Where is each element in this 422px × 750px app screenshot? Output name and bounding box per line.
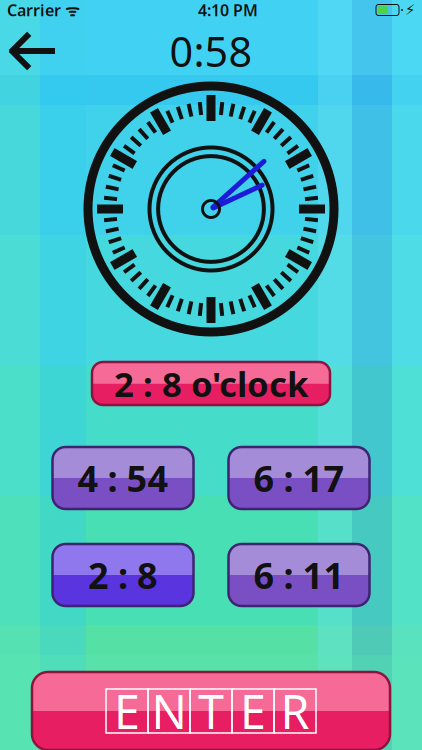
button[interactable]: 2 : 8 o'clock	[92, 362, 330, 405]
staticText: ⚡︎	[405, 2, 415, 18]
staticText: 4:10 PM	[198, 0, 258, 21]
staticText: E	[240, 680, 266, 742]
staticText: R	[280, 680, 309, 742]
button[interactable]: Back	[0, 29, 62, 73]
button[interactable]: 2 : 8	[52, 544, 193, 606]
staticText: Carrier	[7, 0, 61, 21]
staticText: 2 : 8	[88, 551, 158, 599]
staticText: T	[198, 680, 224, 742]
staticText: 6 : 17	[253, 454, 344, 502]
staticText: E	[114, 680, 140, 742]
button[interactable]: 6 : 11	[228, 544, 369, 606]
staticText: 2 : 8 o'clock	[114, 360, 308, 406]
staticText: 4 : 54	[77, 454, 168, 502]
button[interactable]: 6 : 17	[228, 447, 369, 509]
staticText: N	[151, 680, 186, 742]
staticText: 0:58	[169, 24, 252, 78]
button[interactable]: 4 : 54	[52, 447, 193, 509]
staticText: 6 : 11	[253, 551, 344, 599]
staticText: ᯤ	[61, 0, 80, 21]
button[interactable]: E	[32, 672, 390, 750]
